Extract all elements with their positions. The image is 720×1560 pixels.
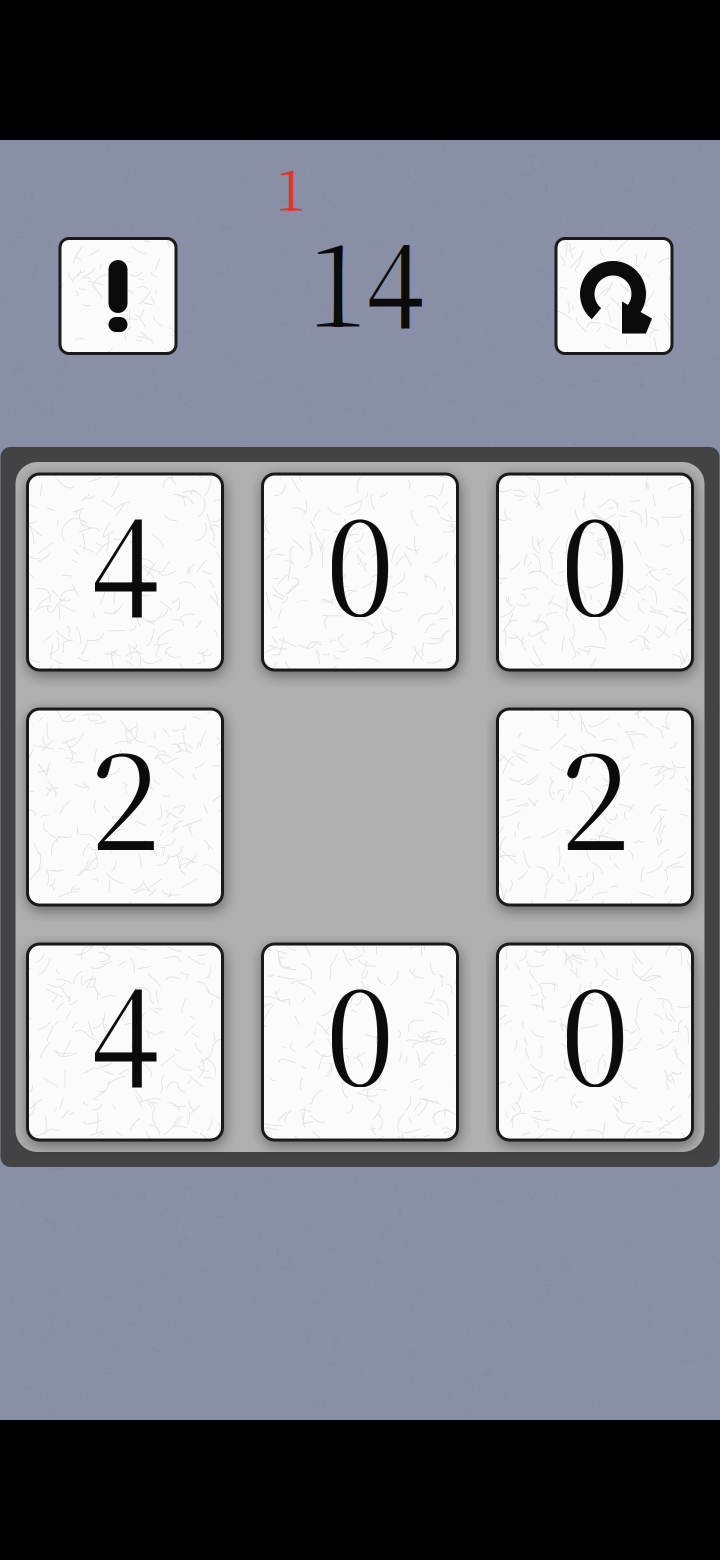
button[interactable]: 4 bbox=[27, 944, 222, 1140]
staticText: 0 bbox=[325, 463, 394, 665]
staticText: 4 bbox=[90, 933, 159, 1135]
button[interactable]: 0 bbox=[497, 474, 692, 670]
staticText: 0 bbox=[560, 463, 629, 665]
staticText: 0 bbox=[560, 933, 629, 1135]
button[interactable]: 4 bbox=[27, 474, 222, 670]
staticText: 2 bbox=[560, 698, 629, 900]
staticText: 0 bbox=[325, 933, 394, 1135]
button[interactable]: 0 bbox=[262, 944, 457, 1140]
staticText: 14 bbox=[308, 198, 424, 368]
staticText: 4 bbox=[90, 463, 159, 665]
button[interactable]: 0 bbox=[262, 474, 457, 670]
button[interactable]: 2 bbox=[497, 709, 692, 905]
button[interactable]: 2 bbox=[27, 709, 222, 905]
staticText: 2 bbox=[90, 698, 159, 900]
button[interactable]: Restart bbox=[556, 238, 672, 353]
staticText: 1 bbox=[276, 147, 305, 231]
button[interactable]: Hint bbox=[60, 238, 176, 353]
button[interactable]: 0 bbox=[497, 944, 692, 1140]
